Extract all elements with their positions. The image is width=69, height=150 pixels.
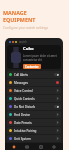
- other: Open: [56, 121, 59, 124]
- button[interactable]: Do Not Disturb: [7, 103, 61, 110]
- staticText: Cubo: [23, 46, 34, 52]
- button[interactable]: Call Alerts: [7, 71, 61, 78]
- staticText: Unit System: [14, 137, 31, 141]
- button[interactable]: Find Device: [7, 111, 61, 118]
- staticText: MANAGE: [3, 9, 27, 16]
- button[interactable]: Customize: [23, 64, 41, 69]
- staticText: Quick Controls: [14, 97, 35, 101]
- button[interactable]: Unit System: [7, 135, 61, 142]
- button[interactable]: Tab 1: [22, 143, 32, 150]
- other: Toggle: [54, 73, 59, 76]
- staticText: watch: [19, 40, 27, 44]
- staticText: Voice Control: [14, 89, 33, 93]
- staticText: Date Presets: [14, 121, 32, 125]
- other: Open: [56, 137, 59, 140]
- button[interactable]: Cubo: [7, 45, 61, 69]
- staticText: Call Alerts: [14, 73, 29, 77]
- staticText: Lorem ipsum dolor sit amet: [23, 54, 57, 58]
- other: Open: [56, 89, 59, 92]
- staticText: Find Device: [14, 113, 31, 117]
- button[interactable]: Voice Control: [7, 87, 61, 94]
- staticText: Customize: [25, 65, 39, 69]
- staticText: Configure your watch settings: [3, 26, 48, 30]
- button[interactable]: Quick Controls: [7, 95, 61, 102]
- staticText: Intuitive Pairing: [14, 129, 37, 133]
- staticText: Messages: [14, 81, 28, 85]
- button[interactable]: Date Presets: [7, 119, 61, 126]
- other: Toggle: [54, 105, 59, 108]
- other: Open: [56, 129, 59, 132]
- button[interactable]: Messages: [7, 79, 61, 86]
- other: Open: [56, 113, 59, 116]
- button[interactable]: Tab 0: [9, 143, 19, 150]
- staticText: EQUIPMENT: [3, 16, 36, 23]
- other: Open: [56, 97, 59, 100]
- button[interactable]: Tab 2: [36, 143, 46, 150]
- staticText: consectetur elit: [23, 58, 42, 62]
- staticText: Do Not Disturb: [14, 105, 36, 109]
- button[interactable]: Intuitive Pairing: [7, 127, 61, 134]
- button[interactable]: Tab 3: [49, 143, 59, 150]
